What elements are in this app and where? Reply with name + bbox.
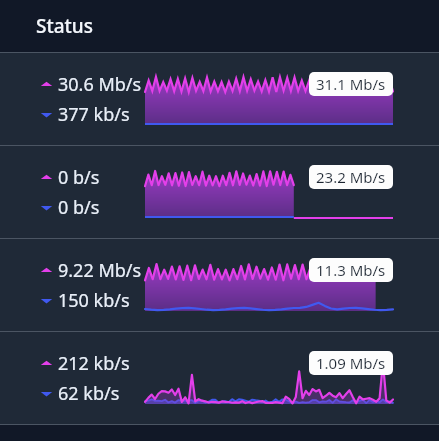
staticText: 9.22 Mb/s	[58, 258, 142, 283]
button[interactable]: 212 kb/s	[0, 332, 439, 424]
staticText: 23.2 Mb/s	[316, 167, 386, 187]
staticText: 212 kb/s	[58, 351, 130, 376]
staticText: 150 kb/s	[58, 288, 130, 313]
staticText: 0 b/s	[58, 165, 100, 190]
button[interactable]: 30.6 Mb/s	[0, 53, 439, 145]
staticText: 30.6 Mb/s	[58, 72, 142, 97]
staticText: 62 kb/s	[58, 381, 120, 406]
button[interactable]: 9.22 Mb/s	[0, 239, 439, 331]
staticText: 31.1 Mb/s	[316, 74, 386, 94]
button[interactable]: 0 b/s	[0, 146, 439, 238]
staticText: 11.3 Mb/s	[316, 260, 386, 280]
staticText: Status	[36, 13, 94, 39]
staticText: 377 kb/s	[58, 102, 130, 127]
staticText: 1.09 Mb/s	[316, 353, 386, 373]
staticText: 0 b/s	[58, 195, 100, 220]
